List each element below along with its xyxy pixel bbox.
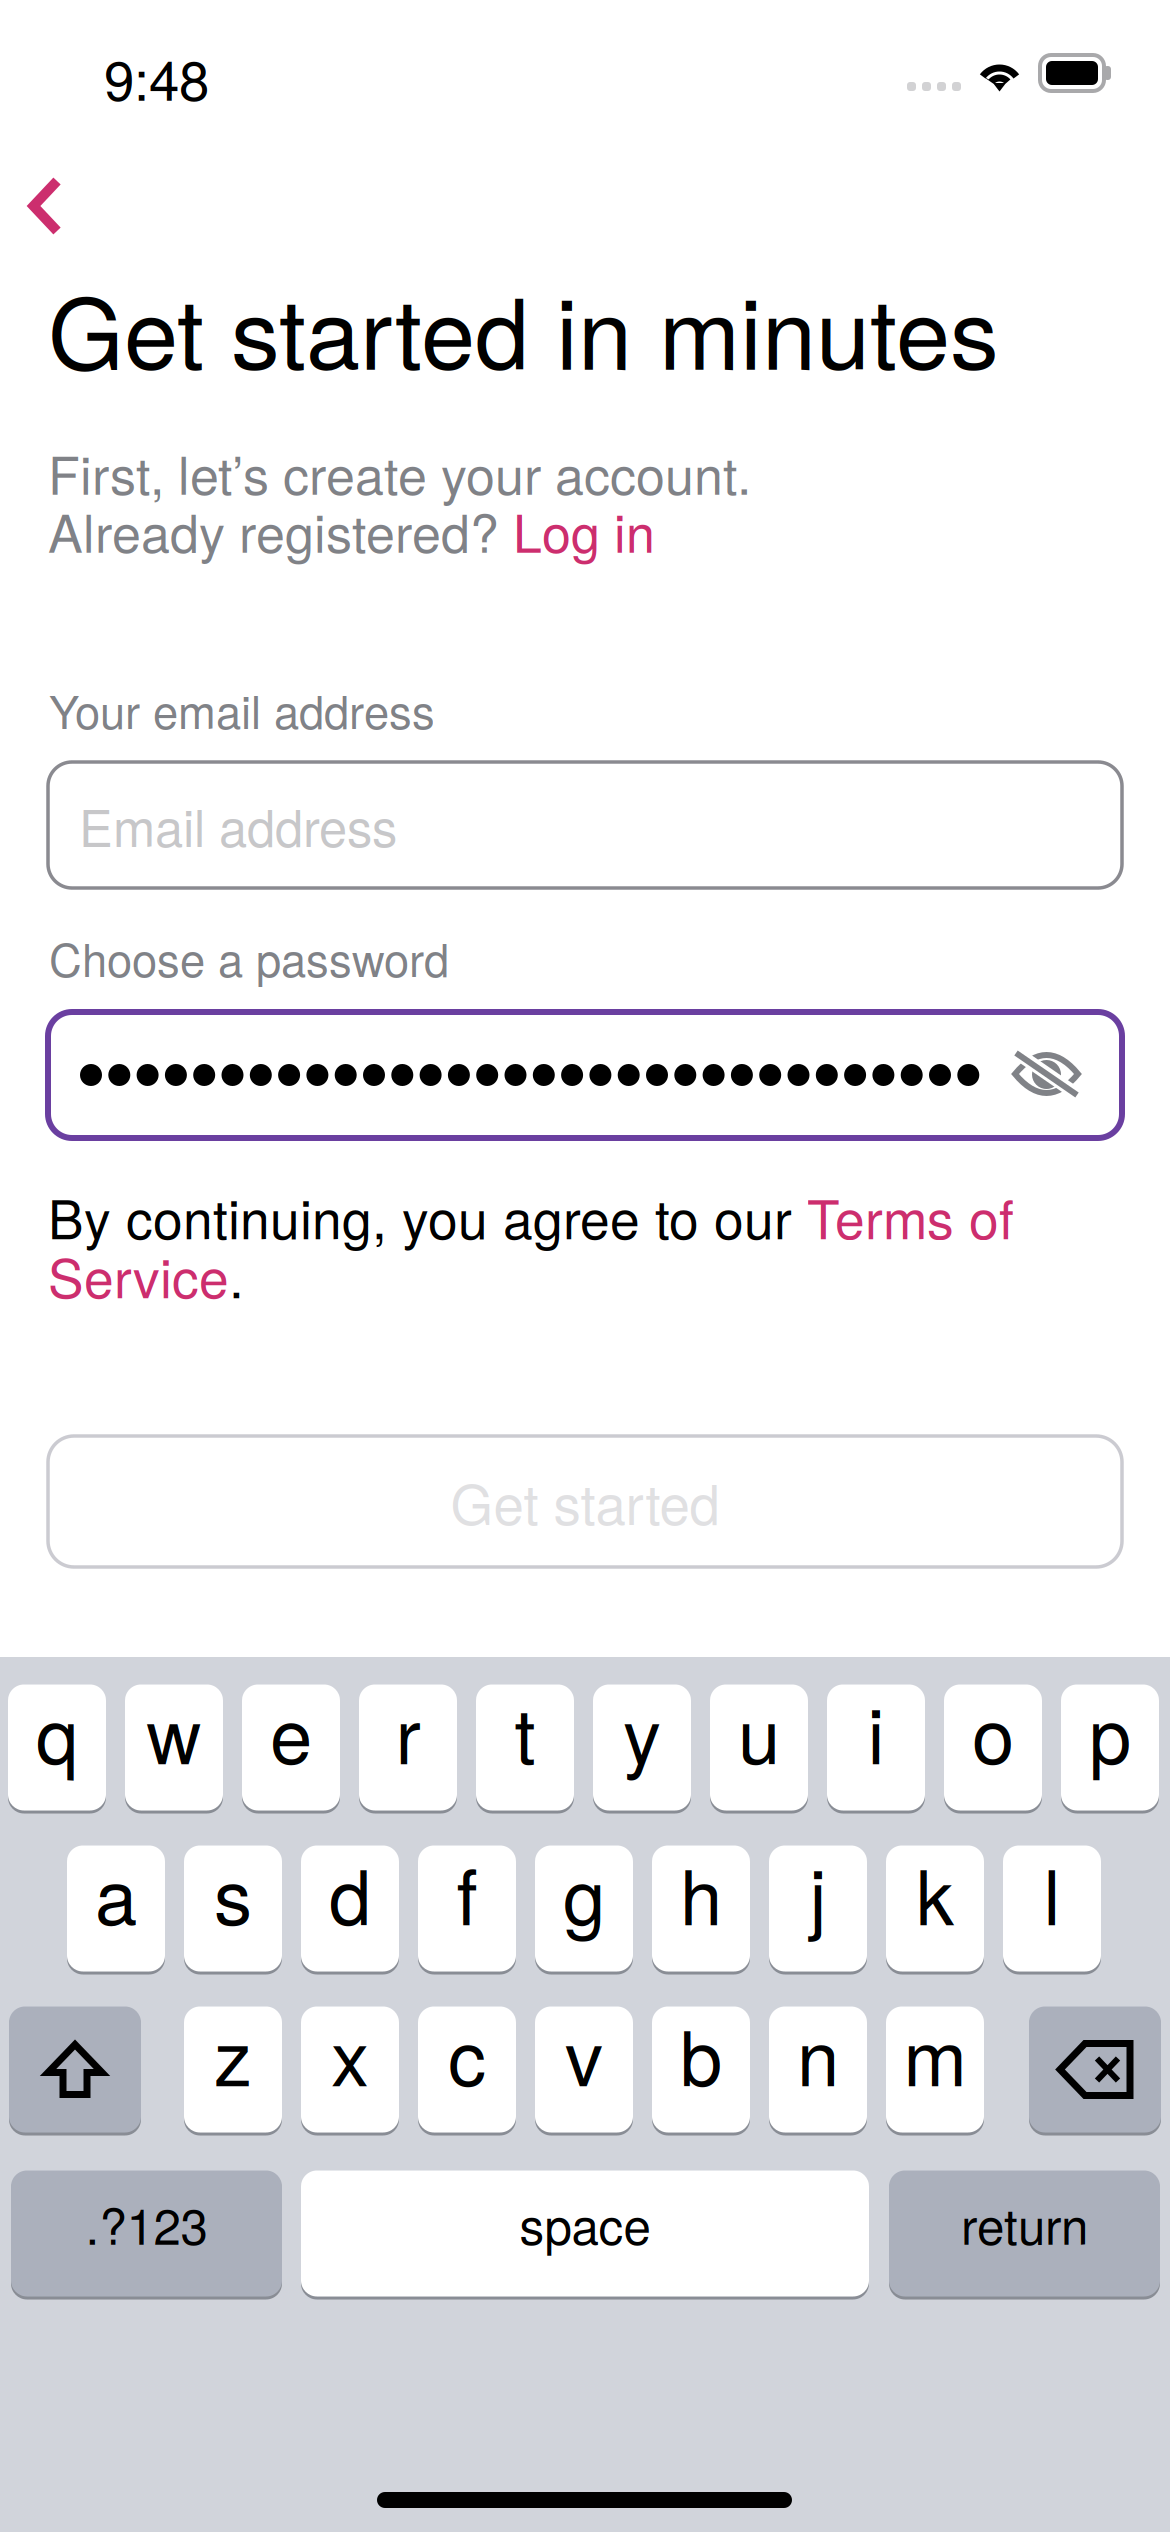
staticText: Service (48, 1237, 229, 1313)
staticText: Get started in minutes (48, 258, 999, 397)
button[interactable]: .?123 (11, 2169, 282, 2298)
button[interactable]: Log in (499, 493, 655, 567)
button[interactable]: p (1061, 1683, 1159, 1812)
staticText: Get started (450, 1462, 719, 1541)
button[interactable]: Terms of (807, 1178, 1014, 1254)
button[interactable]: k (886, 1844, 984, 1973)
staticText: First, let’s create your account. (48, 435, 751, 509)
staticText: 9:48 (104, 38, 209, 116)
staticText: p (1089, 1677, 1131, 1786)
staticText: y (623, 1677, 661, 1786)
button[interactable]: l (1003, 1844, 1101, 1973)
button[interactable]: q (8, 1683, 106, 1812)
button[interactable]: c (418, 2005, 516, 2134)
button[interactable]: r (359, 1683, 457, 1812)
staticText: l (1043, 1838, 1060, 1947)
button[interactable]: v (535, 2005, 633, 2134)
button[interactable]: Show password (1012, 1051, 1082, 1099)
staticText: n (797, 1999, 839, 2108)
staticText: a (95, 1838, 137, 1947)
button[interactable]: w (125, 1683, 223, 1812)
staticText: e (270, 1677, 312, 1786)
staticText: t (514, 1677, 535, 1786)
staticText: w (146, 1677, 201, 1786)
staticText: Terms of (807, 1178, 1014, 1254)
button[interactable]: Get started (48, 1436, 1122, 1567)
button[interactable]: Back (0, 150, 120, 260)
staticText: . (229, 1237, 244, 1313)
staticText: v (565, 1999, 603, 2108)
staticText: u (738, 1677, 780, 1786)
staticText: g (563, 1838, 605, 1947)
button[interactable]: z (184, 2005, 282, 2134)
button[interactable]: j (769, 1844, 867, 1973)
button[interactable]: y (593, 1683, 691, 1812)
button[interactable]: o (944, 1683, 1042, 1812)
button[interactable]: Delete (1029, 2005, 1161, 2134)
button[interactable]: u (710, 1683, 808, 1812)
button[interactable]: i (827, 1683, 925, 1812)
button[interactable]: f (418, 1844, 516, 1973)
staticText: .?123 (85, 2188, 207, 2259)
button[interactable]: m (886, 2005, 984, 2134)
staticText: h (680, 1838, 722, 1947)
button[interactable]: h (652, 1844, 750, 1973)
staticText: j (809, 1838, 826, 1947)
staticText: Log in (513, 493, 655, 567)
button[interactable]: x (301, 2005, 399, 2134)
staticText: Choose a password (49, 925, 449, 990)
button[interactable]: s (184, 1844, 282, 1973)
button[interactable]: return (889, 2169, 1160, 2298)
staticText: r (395, 1677, 420, 1786)
staticText: d (329, 1838, 371, 1947)
button[interactable]: d (301, 1844, 399, 1973)
staticText: q (36, 1677, 78, 1786)
staticText: space (519, 2188, 650, 2259)
staticText: f (456, 1838, 477, 1947)
staticText: k (916, 1838, 954, 1947)
staticText: c (448, 1999, 486, 2108)
button[interactable]: g (535, 1844, 633, 1973)
button[interactable]: Service (48, 1237, 229, 1313)
button[interactable]: Shift (9, 2005, 141, 2134)
button[interactable]: b (652, 2005, 750, 2134)
staticText: s (214, 1838, 252, 1947)
staticText: Email address (79, 789, 397, 861)
staticText: m (903, 1999, 966, 2108)
staticText: Already registered? (48, 493, 499, 567)
button[interactable]: space (301, 2169, 869, 2298)
button[interactable]: t (476, 1683, 574, 1812)
staticText: z (214, 1999, 252, 2108)
staticText: Your email address (49, 677, 435, 742)
staticText: o (972, 1677, 1014, 1786)
button[interactable]: n (769, 2005, 867, 2134)
staticText: return (961, 2188, 1088, 2259)
staticText: i (867, 1677, 884, 1786)
staticText: x (331, 1999, 369, 2108)
staticText: b (680, 1999, 722, 2108)
staticText: By continuing, you agree to our (48, 1178, 807, 1254)
button[interactable]: e (242, 1683, 340, 1812)
button[interactable]: a (67, 1844, 165, 1973)
